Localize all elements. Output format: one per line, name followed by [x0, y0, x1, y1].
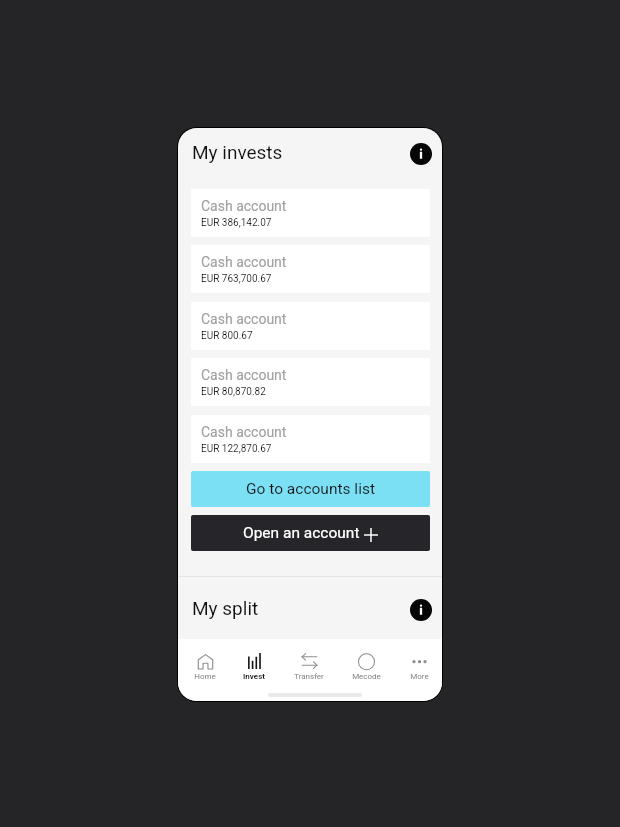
- staticText: Cash account: [201, 367, 287, 383]
- button[interactable]: Mecode: [340, 639, 392, 683]
- button[interactable]: More: [393, 639, 442, 683]
- staticText: Cash account: [201, 311, 287, 327]
- staticText: EUR 122,870.67: [201, 443, 272, 455]
- staticText: Mecode: [352, 672, 381, 681]
- button[interactable]: Invest: [228, 639, 280, 683]
- button[interactable]: Cash account: [191, 358, 430, 406]
- button[interactable]: Cash account: [191, 415, 430, 463]
- button[interactable]: Transfer: [283, 639, 335, 683]
- staticText: Cash account: [201, 254, 287, 270]
- staticText: Cash account: [201, 198, 287, 214]
- staticText: My split: [192, 597, 259, 619]
- staticText: EUR 386,142.07: [201, 217, 272, 229]
- staticText: Invest: [243, 672, 265, 681]
- button[interactable]: Cash account: [191, 302, 430, 350]
- staticText: My invests: [192, 141, 283, 163]
- staticText: EUR 80,870.82: [201, 386, 266, 398]
- staticText: Open an account: [243, 524, 360, 542]
- button[interactable]: Go to accounts list: [191, 471, 430, 507]
- staticText: Cash account: [201, 424, 287, 440]
- staticText: EUR 800.67: [201, 330, 253, 342]
- button[interactable]: Cash account: [191, 245, 430, 293]
- button[interactable]: Home: [179, 639, 231, 683]
- staticText: Home: [194, 672, 216, 681]
- button[interactable]: Open an account: [191, 515, 430, 551]
- staticText: Go to accounts list: [246, 480, 375, 498]
- staticText: More: [410, 672, 429, 681]
- button[interactable]: Cash account: [191, 189, 430, 237]
- staticText: Transfer: [294, 672, 324, 681]
- button[interactable]: Information: [410, 143, 432, 165]
- staticText: EUR 763,700.67: [201, 273, 272, 285]
- button[interactable]: Information: [410, 599, 432, 621]
